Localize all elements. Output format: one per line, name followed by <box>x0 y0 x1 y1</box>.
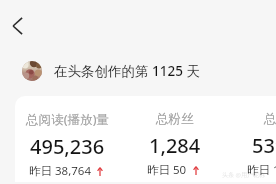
staticText: 在头条创作的第 1125 天 <box>54 62 200 80</box>
staticText: 昨日 38,764 <box>29 163 91 179</box>
staticText: 总粉丝 <box>156 111 194 127</box>
staticText: 总收入 <box>264 111 276 127</box>
button[interactable]: 总收入 <box>229 111 276 178</box>
staticText: 总阅读(播放)量 <box>26 111 110 128</box>
button[interactable]: 总粉丝 <box>121 111 229 178</box>
staticText: 495,236 <box>30 133 105 160</box>
staticText: 头条 @用户昵称 <box>222 171 265 179</box>
staticText: 1,284 <box>149 132 201 159</box>
staticText: 昨日 50 <box>147 162 187 178</box>
staticText: 昨日 12.35 <box>247 162 276 178</box>
staticText: 539.94 <box>252 132 276 159</box>
button[interactable]: 在头条创作的第 1125 天 <box>22 61 276 81</box>
button[interactable]: Back <box>3 12 31 40</box>
button[interactable]: 总阅读(播放)量 <box>15 111 121 179</box>
